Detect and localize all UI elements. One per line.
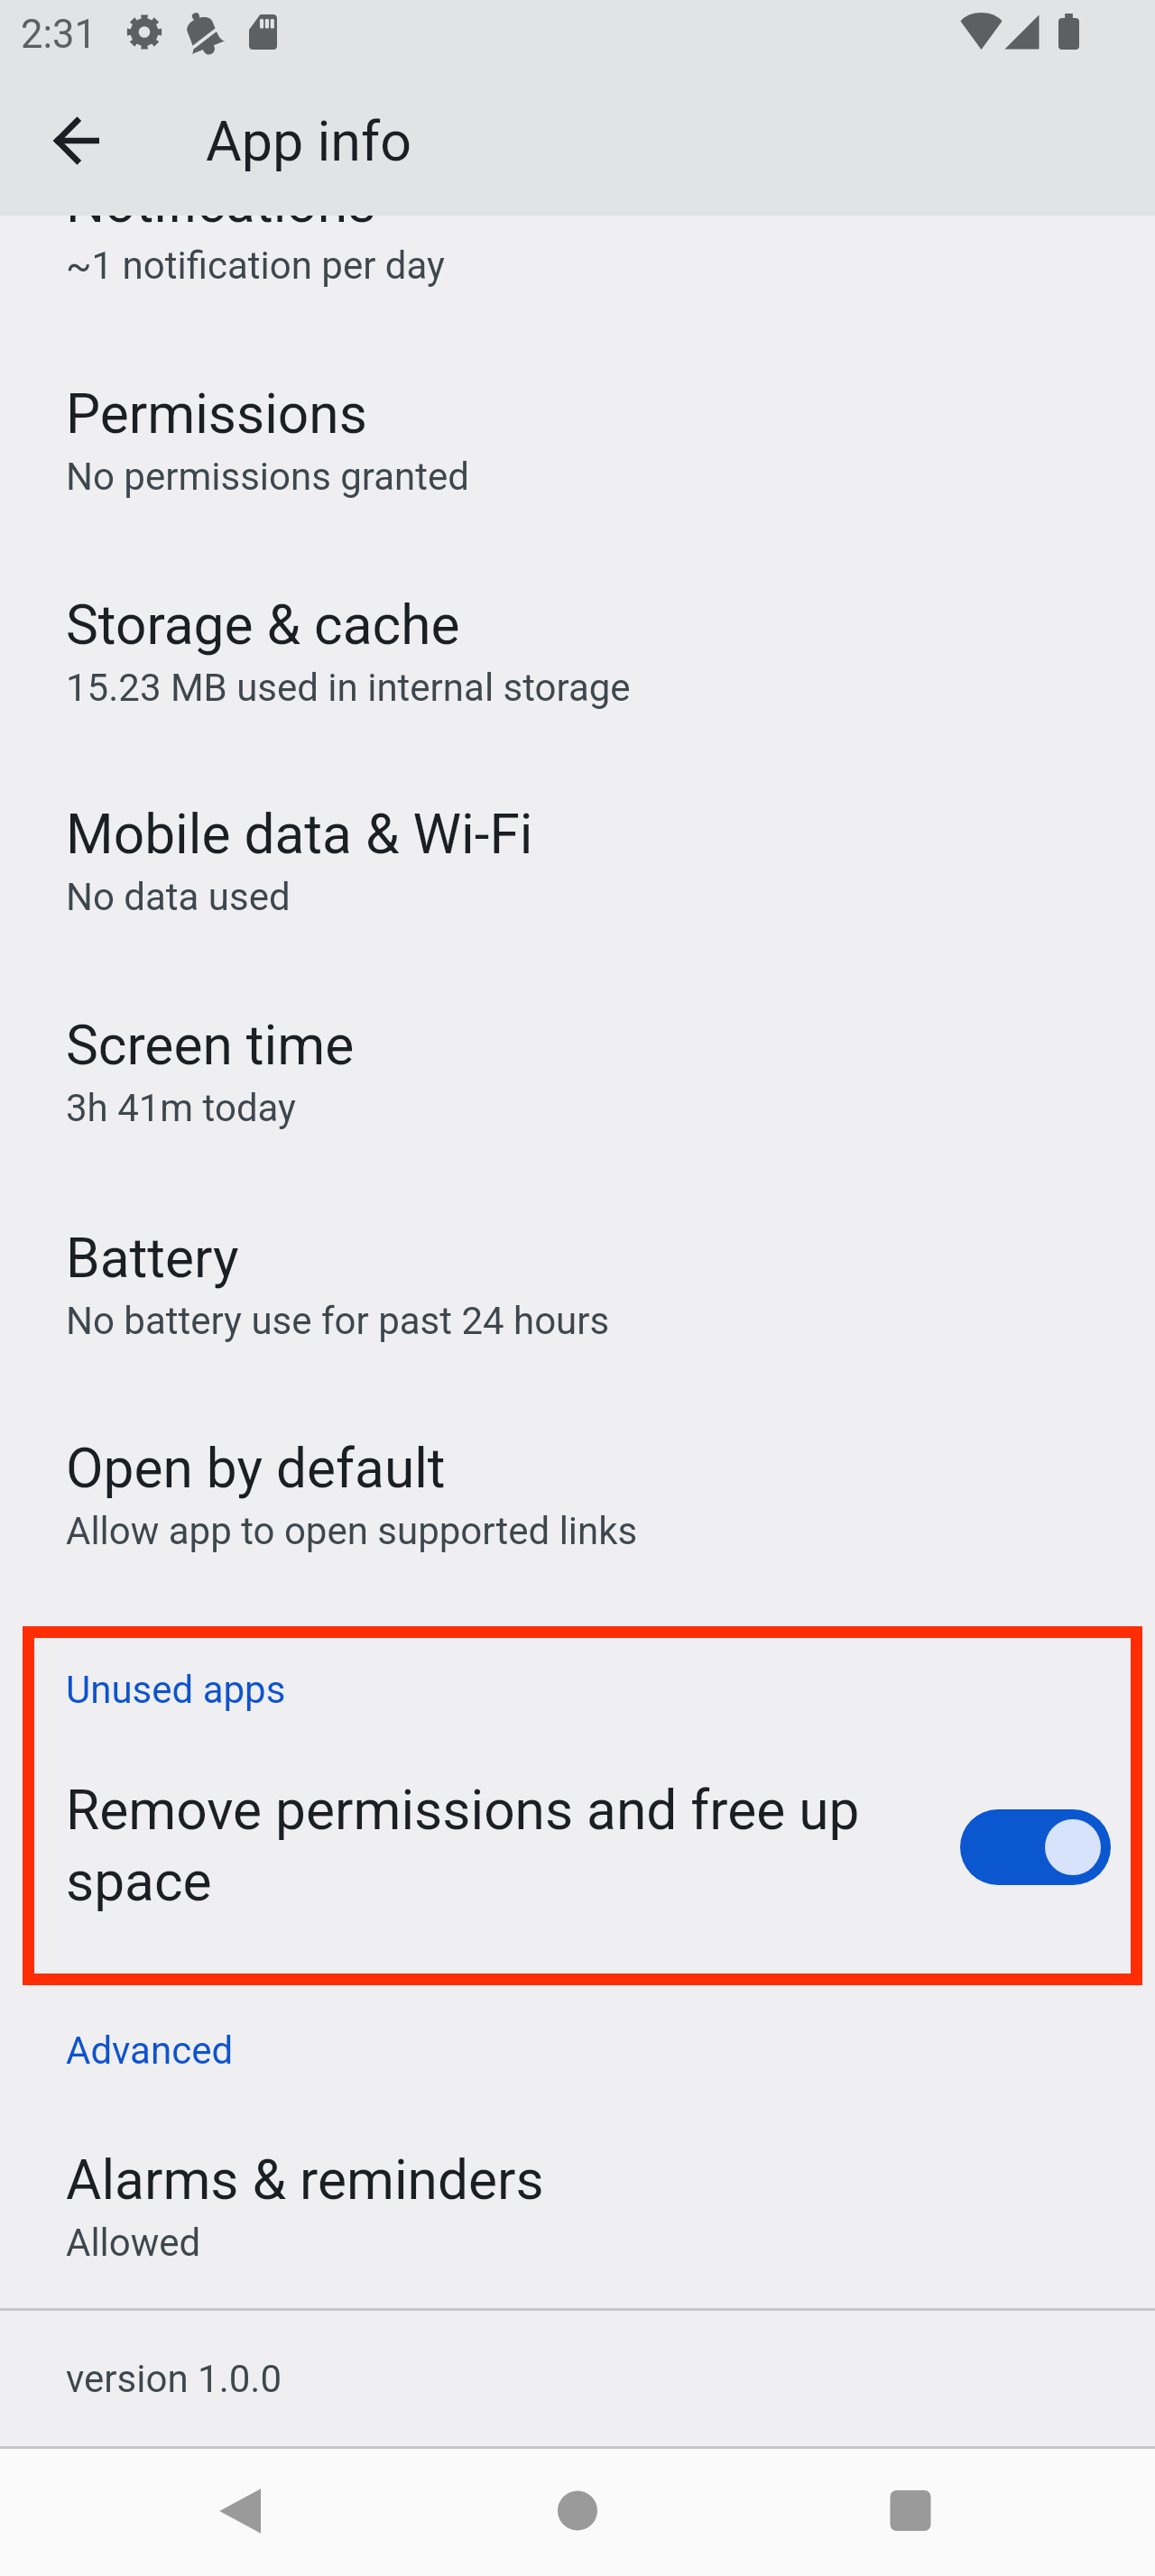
button[interactable]: Open by default: [0, 1437, 1155, 1635]
staticText: Alarms & reminders: [66, 2148, 544, 2213]
staticText: Advanced: [66, 2029, 234, 2073]
staticText: Notifications: [66, 171, 376, 235]
button[interactable]: Storage & cache: [0, 593, 1155, 792]
button[interactable]: Home: [523, 2449, 632, 2557]
button[interactable]: Alarms & reminders: [0, 2148, 1155, 2347]
staticText: Remove permissions and free up space: [66, 1779, 860, 1913]
staticText: Open by default: [66, 1437, 446, 1501]
staticText: App info: [206, 109, 411, 173]
staticText: Storage & cache: [66, 593, 460, 658]
staticText: Permissions: [66, 382, 367, 446]
staticText: 2:31: [21, 12, 97, 58]
button[interactable]: Mobile data & Wi-Fi: [0, 803, 1155, 1001]
staticText: Unused apps: [66, 1668, 286, 1712]
button[interactable]: Notifications: [0, 171, 1155, 370]
staticText: No data used: [66, 875, 291, 919]
button[interactable]: Advanced: [0, 2016, 1155, 2115]
staticText: Screen time: [66, 1014, 355, 1078]
staticText: 15.23 MB used in internal storage: [66, 666, 631, 710]
staticText: 3h 41m today: [66, 1086, 296, 1130]
button[interactable]: Back: [187, 2449, 295, 2557]
staticText: No permissions granted: [66, 455, 470, 499]
button[interactable]: Remove permissions and free up space: [0, 1759, 1155, 1948]
staticText: version 1.0.0: [66, 2357, 282, 2401]
button[interactable]: Navigate up: [34, 97, 121, 184]
button[interactable]: Recent apps: [856, 2449, 965, 2557]
staticText: Allow app to open supported links: [66, 1509, 638, 1553]
button[interactable]: Permissions: [0, 382, 1155, 581]
staticText: ~1 notification per day: [66, 244, 445, 288]
staticText: Allowed: [66, 2221, 201, 2265]
button[interactable]: Battery: [0, 1227, 1155, 1425]
staticText: Mobile data & Wi-Fi: [66, 803, 533, 867]
button[interactable]: Screen time: [0, 1014, 1155, 1212]
staticText: No battery use for past 24 hours: [66, 1299, 610, 1343]
staticText: Battery: [66, 1227, 239, 1291]
